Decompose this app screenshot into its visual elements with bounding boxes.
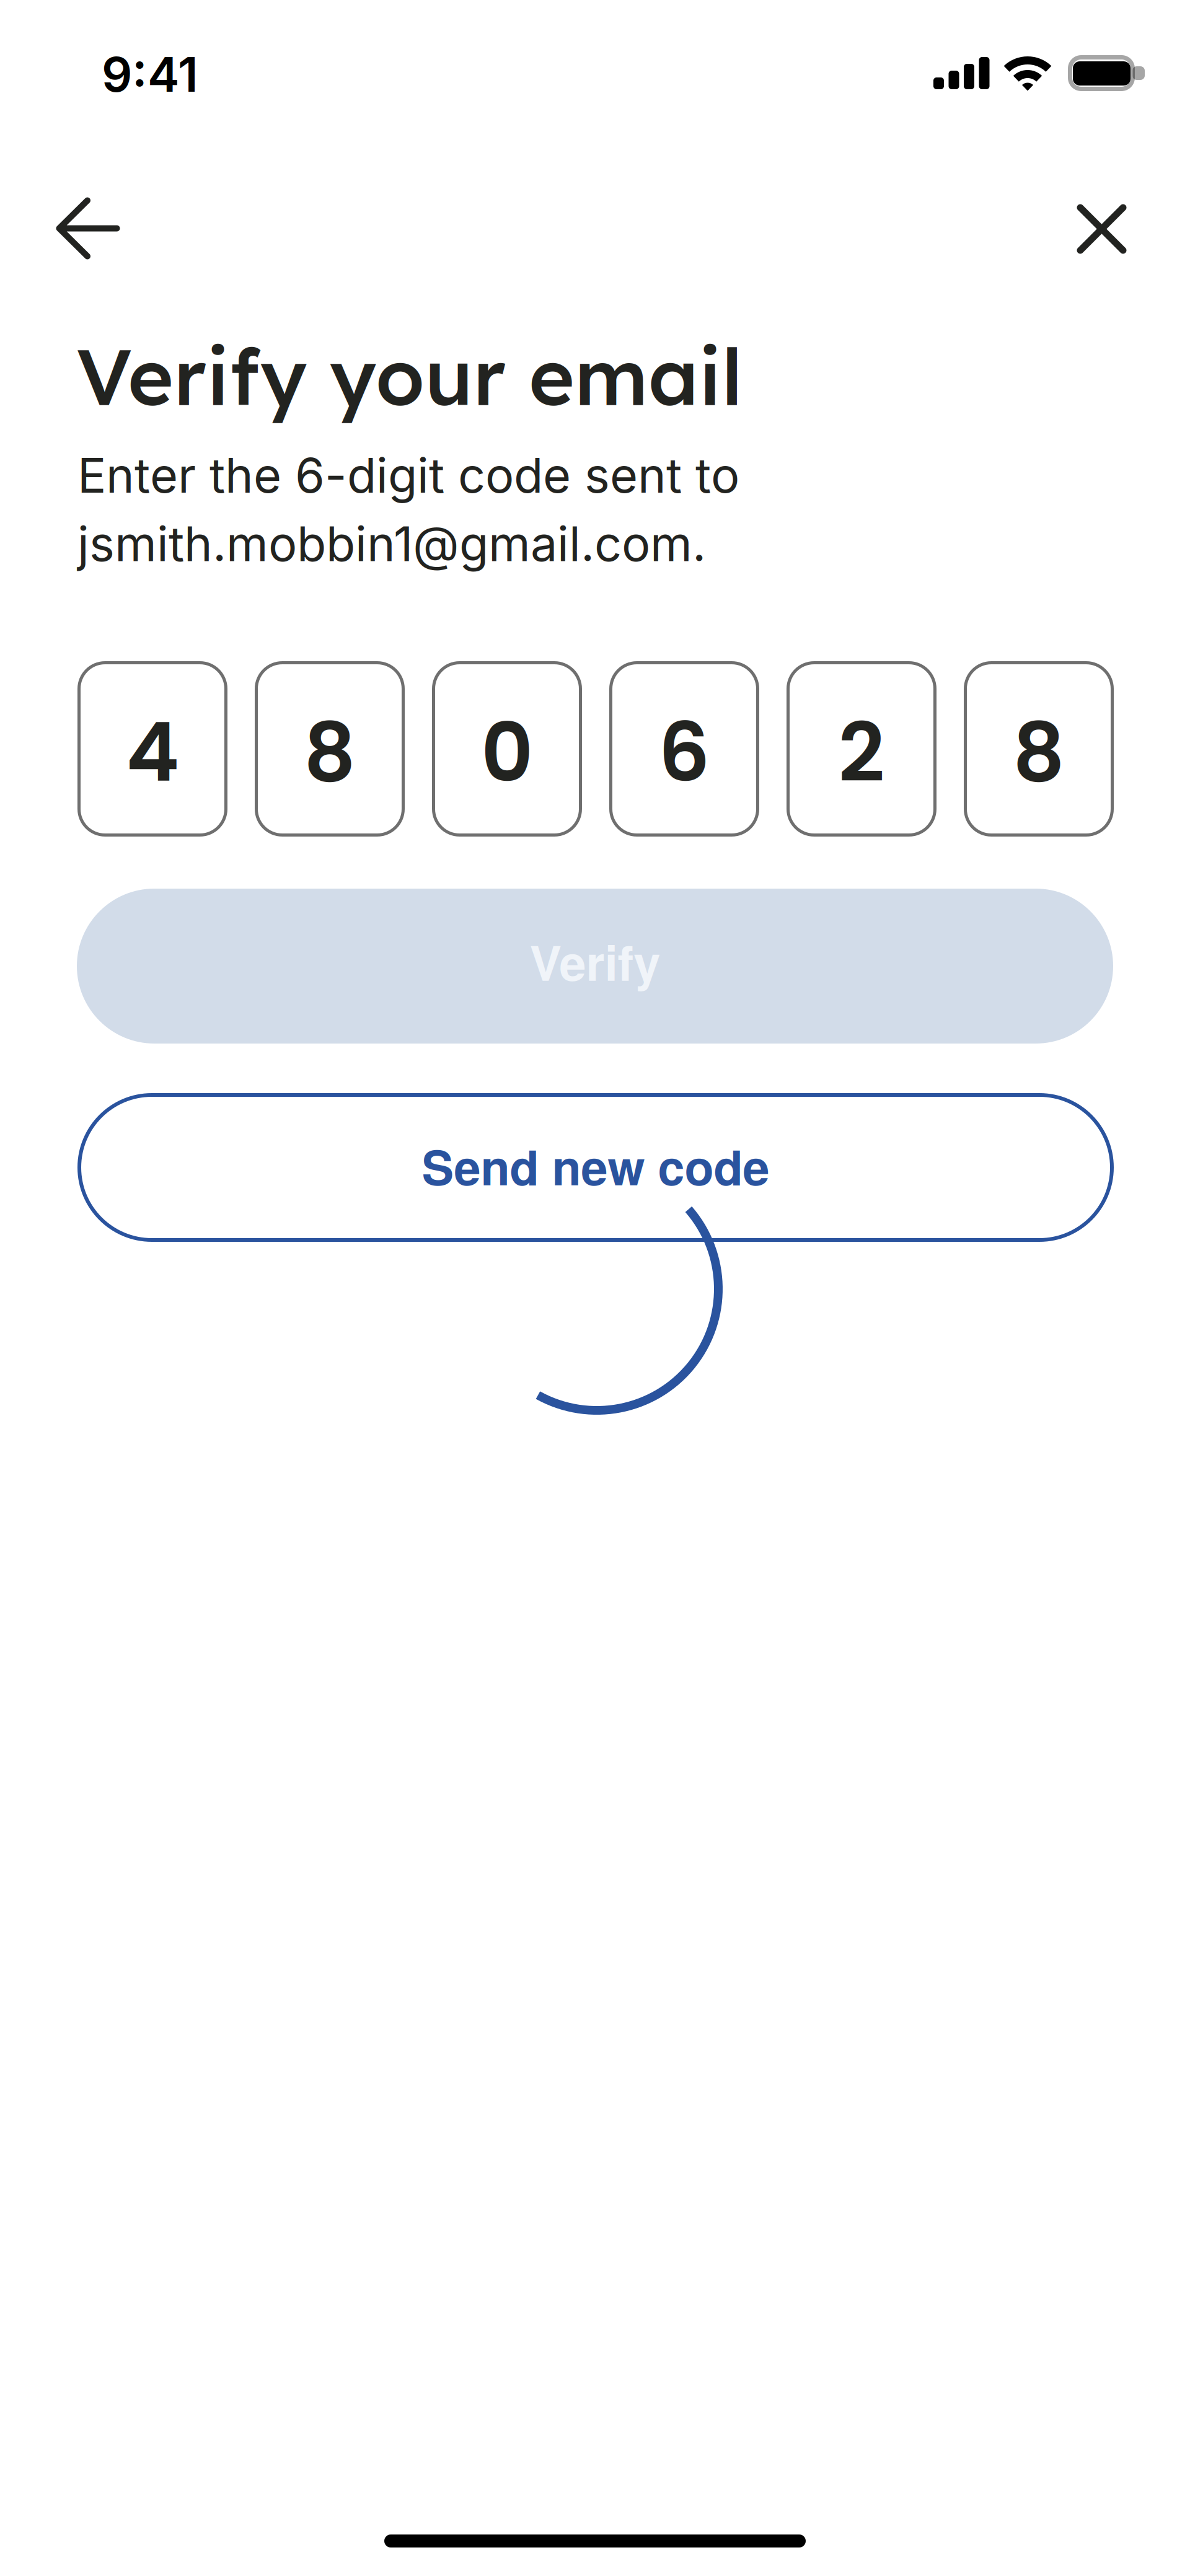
staticText: Verify your email: [76, 327, 743, 425]
button[interactable]: Back: [0, 169, 146, 288]
button[interactable]: 4: [77, 661, 227, 837]
staticText: 8: [1013, 696, 1065, 809]
staticText: 0: [481, 696, 533, 809]
staticText: 4: [126, 696, 179, 809]
staticText: 8: [304, 696, 356, 809]
staticText: Send new code: [422, 1131, 769, 1200]
button[interactable]: 8: [255, 661, 405, 837]
staticText: Verify: [530, 927, 660, 995]
staticText: 9:41: [102, 45, 198, 103]
button[interactable]: 0: [432, 661, 582, 837]
staticText: 2: [838, 696, 885, 809]
staticText: 6: [658, 696, 710, 809]
button[interactable]: 2: [787, 661, 937, 837]
staticText: Enter the 6-digit code sent to jsmith.mo…: [77, 446, 739, 573]
button[interactable]: Close: [1049, 176, 1190, 281]
button[interactable]: Send new code: [77, 1093, 1114, 1242]
button[interactable]: 8: [964, 661, 1114, 837]
button[interactable]: Verify: [77, 889, 1113, 1044]
button[interactable]: 6: [609, 661, 759, 837]
